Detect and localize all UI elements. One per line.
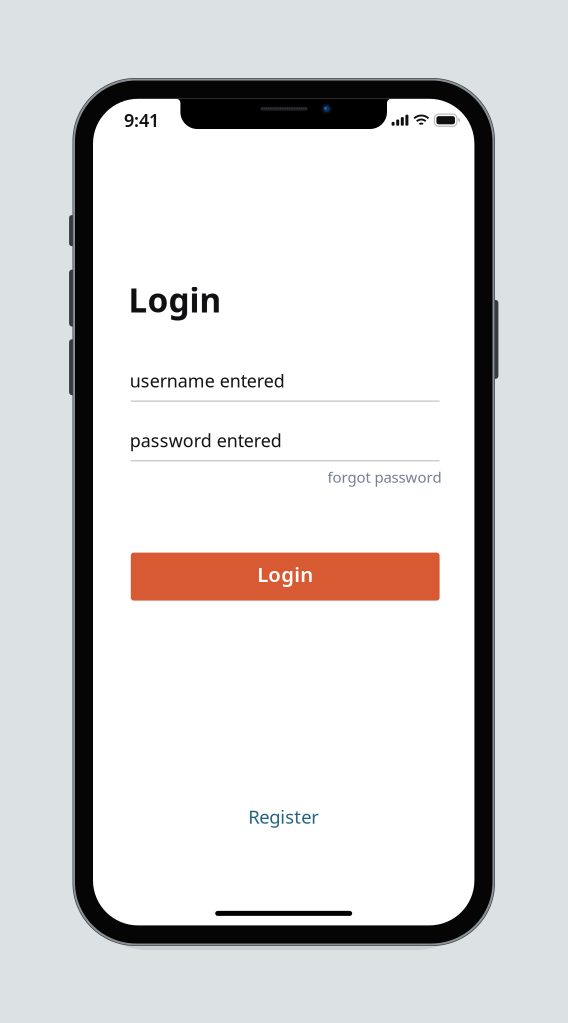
staticText: forgot password	[328, 467, 442, 487]
button[interactable]: password entered	[131, 416, 440, 466]
staticText: 9:41	[124, 108, 159, 132]
staticText: Login	[257, 561, 313, 588]
button[interactable]: forgot password	[133, 466, 442, 488]
button[interactable]: Register	[204, 804, 364, 830]
button[interactable]: Login	[131, 553, 440, 601]
staticText: password entered	[130, 428, 282, 452]
button[interactable]: username entered	[131, 357, 440, 407]
staticText: username entered	[130, 369, 285, 392]
staticText: Login	[129, 277, 222, 322]
staticText: Register	[248, 804, 319, 829]
